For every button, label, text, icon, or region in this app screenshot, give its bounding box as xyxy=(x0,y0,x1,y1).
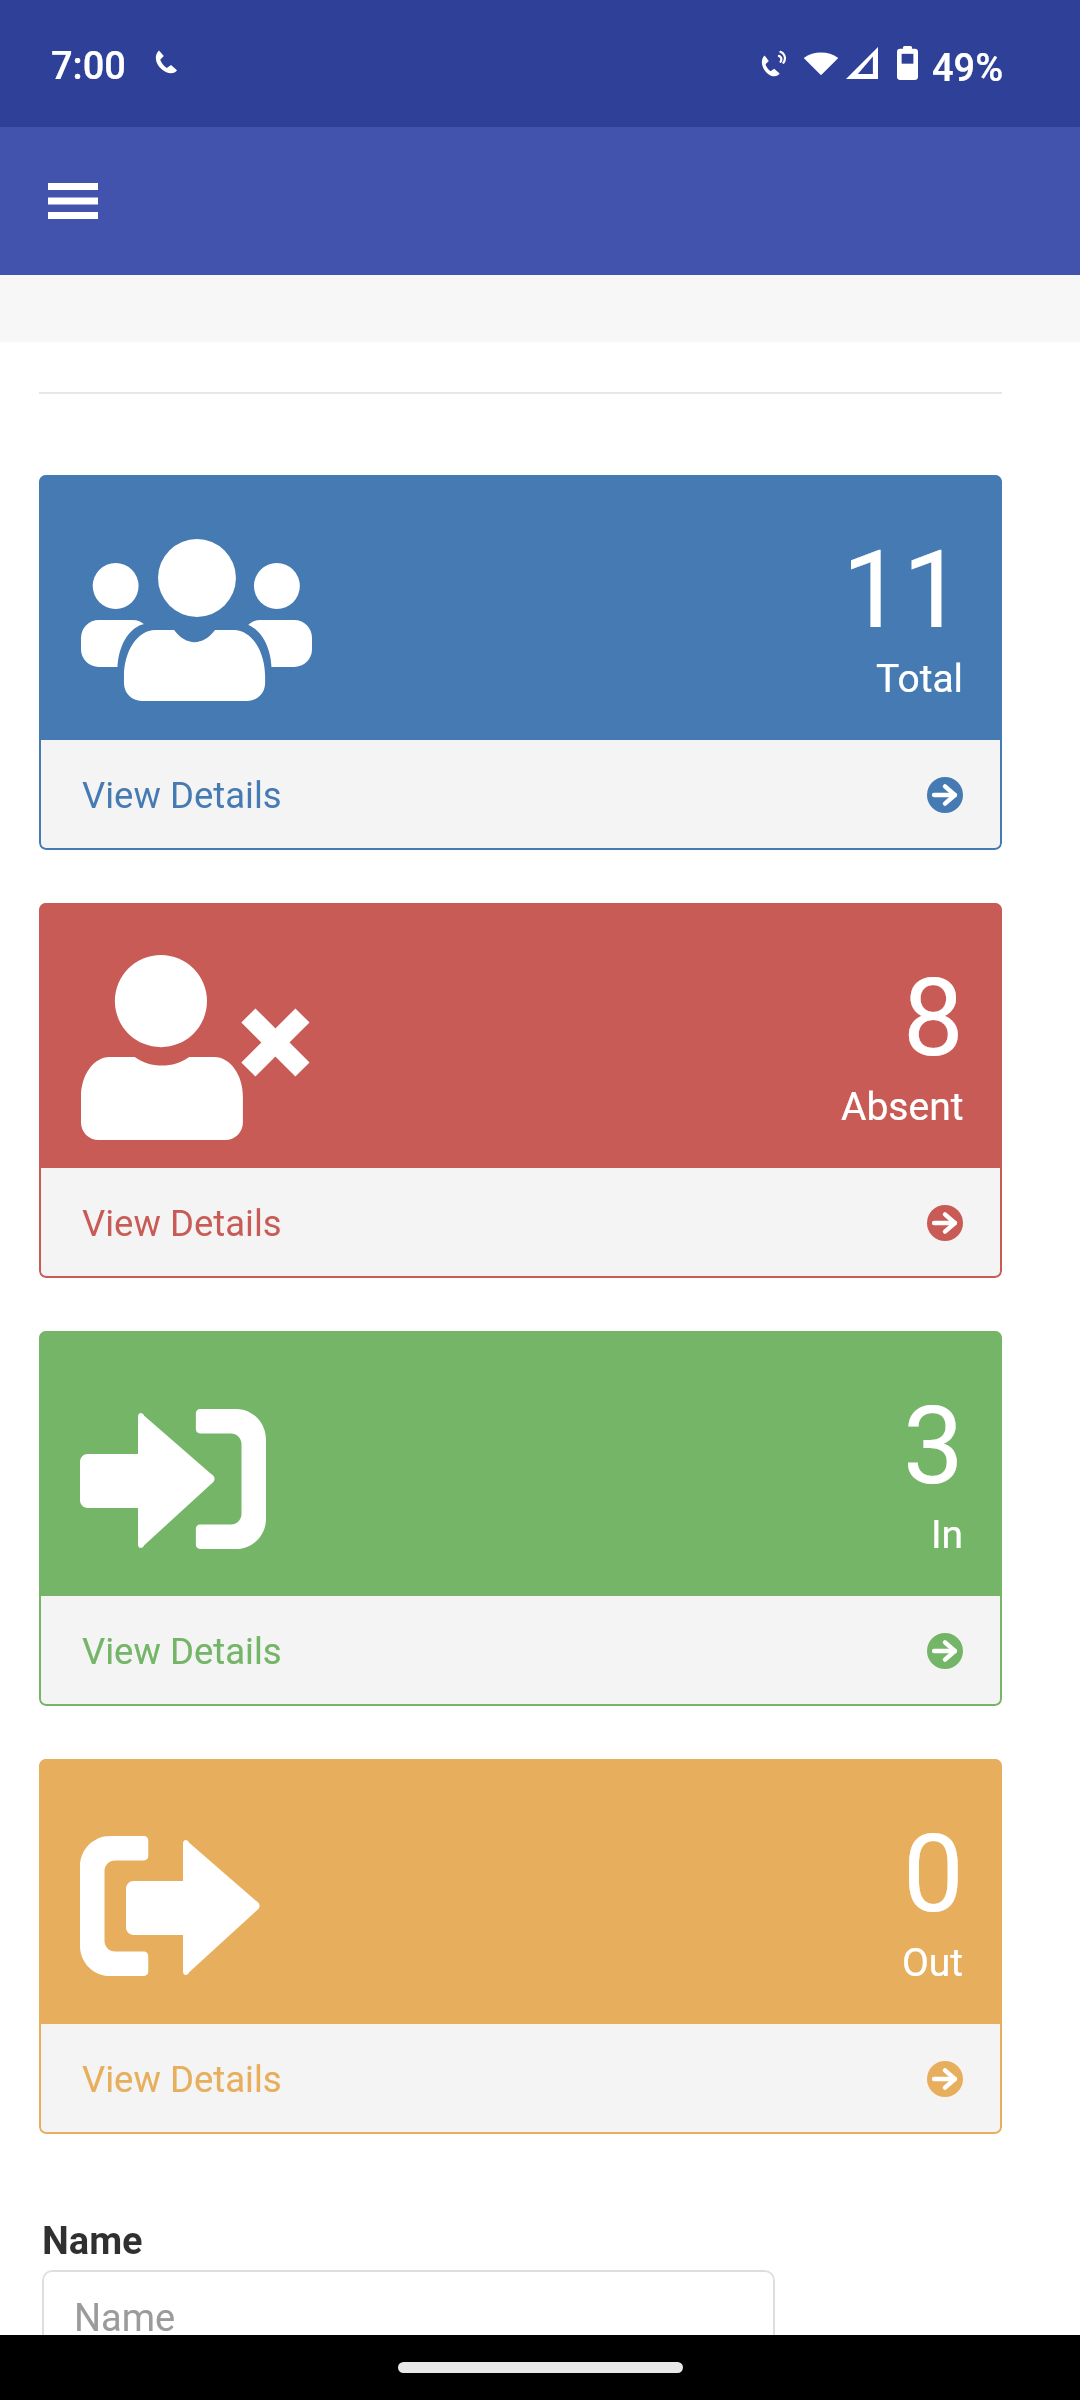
staticText: View Details xyxy=(82,2058,282,2101)
staticText: View Details xyxy=(82,1202,282,1245)
other: View details xyxy=(927,777,963,813)
staticText: 0 xyxy=(903,1811,964,1938)
staticText: 8 xyxy=(903,955,964,1082)
staticText: 3 xyxy=(903,1383,964,1510)
staticText: Absent xyxy=(841,1084,964,1130)
staticText: In xyxy=(931,1512,964,1558)
staticText: 49% xyxy=(932,46,1004,91)
button[interactable]: Open navigation menu xyxy=(23,151,123,251)
staticText: View Details xyxy=(82,774,282,817)
button[interactable]: 8 xyxy=(39,903,1002,1278)
button[interactable]: 3 xyxy=(39,1331,1002,1706)
staticText: 11 xyxy=(842,527,964,654)
staticText: Name xyxy=(42,2219,143,2264)
other: View details xyxy=(927,1633,963,1669)
other: View details xyxy=(927,2061,963,2097)
button[interactable]: Name xyxy=(42,2270,775,2372)
staticText: View Details xyxy=(82,1630,282,1673)
staticText: Out xyxy=(902,1940,964,1986)
button[interactable]: 0 xyxy=(39,1759,1002,2134)
staticText: Total xyxy=(876,656,964,702)
staticText: Name xyxy=(74,2296,176,2341)
other: View details xyxy=(927,1205,963,1241)
staticText: 7:00 xyxy=(51,44,126,89)
button[interactable]: 11 xyxy=(39,475,1002,850)
